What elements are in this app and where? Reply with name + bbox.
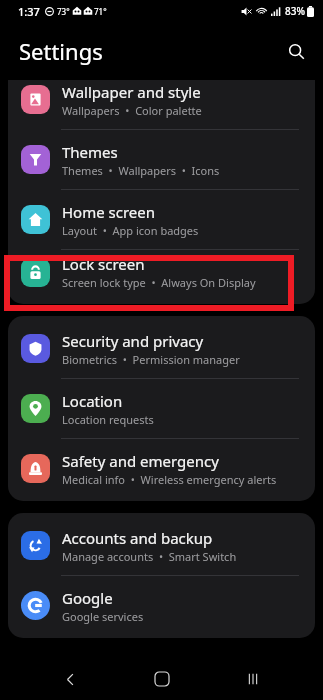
staticText: Wallpapers • Color palette — [62, 103, 202, 118]
button[interactable]: Recents — [231, 658, 275, 700]
staticText: Biometrics • Permission manager — [62, 352, 240, 367]
staticText: 1:37 — [18, 4, 40, 19]
button[interactable]: Safety and emergency — [8, 439, 315, 498]
button[interactable]: Wallpaper and style — [8, 80, 315, 129]
button[interactable]: Home — [140, 658, 184, 700]
staticText: 83% — [285, 4, 305, 18]
staticText: Manage accounts • Smart Switch — [62, 549, 237, 564]
button[interactable]: Google — [8, 576, 315, 635]
staticText: Screen lock type • Always On Display — [62, 275, 256, 290]
button[interactable]: Security and privacy — [8, 319, 315, 378]
button[interactable]: Back — [48, 658, 92, 700]
staticText: Settings — [19, 36, 103, 66]
staticText: 71° — [94, 6, 107, 17]
staticText: Themes • Wallpapers • Icons — [62, 163, 220, 178]
staticText: Accounts and backup — [62, 528, 213, 548]
button[interactable]: Search — [279, 34, 313, 68]
button[interactable]: Lock screen — [8, 250, 315, 294]
staticText: Security and privacy — [62, 331, 204, 351]
staticText: Location requests — [62, 412, 154, 427]
staticText: Home screen — [62, 202, 156, 222]
staticText: Google services — [62, 609, 144, 624]
staticText: Google — [62, 588, 113, 608]
staticText: Themes — [62, 142, 118, 162]
staticText: Safety and emergency — [62, 451, 219, 471]
button[interactable]: Accounts and backup — [8, 516, 315, 575]
staticText: 73° — [57, 6, 70, 17]
staticText: Wallpaper and style — [62, 82, 201, 102]
button[interactable]: Location — [8, 379, 315, 438]
button[interactable]: Home screen — [8, 190, 315, 249]
staticText: Lock screen — [62, 254, 145, 274]
button[interactable]: Themes — [8, 130, 315, 189]
staticText: Medical info • Wireless emergency alerts — [62, 472, 277, 487]
staticText: Location — [62, 391, 123, 411]
staticText: Layout • App icon badges — [62, 223, 199, 238]
